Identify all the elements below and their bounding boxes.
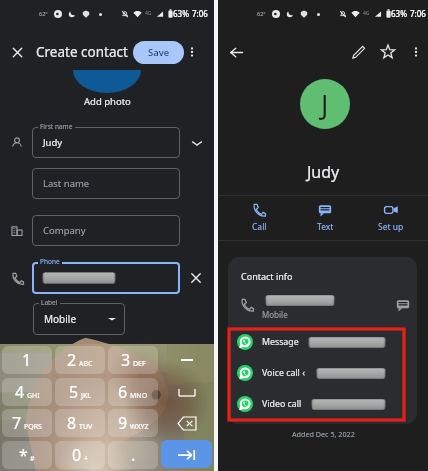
- button[interactable]: Company: [32, 215, 180, 246]
- button[interactable]: J: [300, 79, 350, 129]
- button[interactable]: Mobile: [33, 303, 125, 335]
- staticText: 4G: [363, 10, 370, 17]
- button[interactable]: 8: [55, 409, 105, 437]
- staticText: WXYZ: [130, 422, 149, 432]
- staticText: +: [84, 454, 89, 464]
- button[interactable]: Last name: [32, 168, 180, 199]
- staticText: 4G: [145, 10, 152, 17]
- button[interactable]: More options: [186, 46, 198, 58]
- staticText: Create contact: [36, 43, 128, 61]
- staticText: 8: [67, 412, 77, 434]
- staticText: ABC: [79, 359, 93, 369]
- staticText: Call: [252, 221, 267, 233]
- staticText: Judy: [43, 136, 63, 149]
- button[interactable]: 2: [55, 346, 105, 374]
- staticText: First name: [40, 122, 73, 131]
- staticText: 63%: [391, 8, 407, 19]
- staticText: DEF: [133, 359, 146, 369]
- button[interactable]: 5: [55, 378, 105, 406]
- staticText: 63%: [173, 8, 189, 19]
- staticText: J: [321, 86, 329, 123]
- staticText: Last name: [43, 177, 90, 190]
- staticText: Set up: [378, 221, 404, 233]
- staticText: TUV: [79, 422, 93, 432]
- staticText: Voice call ‹: [262, 367, 305, 379]
- staticText: 1: [22, 349, 32, 371]
- staticText: 9: [118, 412, 128, 434]
- button[interactable]: 9: [108, 409, 158, 437]
- button[interactable]: Edit: [352, 45, 366, 59]
- staticText: Video call: [262, 398, 302, 410]
- staticText: Mobile: [44, 312, 77, 326]
- staticText: 3: [121, 349, 131, 371]
- button[interactable]: Video call: [228, 391, 417, 417]
- button[interactable]: Back: [229, 45, 244, 60]
- button[interactable]: Dash: [161, 346, 212, 374]
- button[interactable]: .: [108, 441, 158, 469]
- staticText: Added Dec 5, 2022: [292, 429, 355, 439]
- staticText: Text: [317, 221, 334, 233]
- staticText: 7:06: [192, 8, 208, 19]
- button[interactable]: Set up: [358, 196, 424, 240]
- staticText: Contact info: [241, 270, 293, 282]
- button[interactable]: 0: [55, 441, 105, 469]
- staticText: Save: [148, 46, 170, 59]
- button[interactable]: Judy: [32, 127, 180, 158]
- button[interactable]: Space: [161, 378, 212, 406]
- staticText: Message: [262, 336, 299, 348]
- button[interactable]: More options: [410, 46, 422, 58]
- button[interactable]: Close: [10, 45, 25, 60]
- staticText: 62°: [39, 10, 48, 17]
- button[interactable]: Clear phone number: [189, 271, 203, 285]
- button[interactable]: Text: [292, 196, 358, 240]
- button[interactable]: Add photo: [73, 70, 141, 92]
- button[interactable]: [32, 262, 180, 294]
- button[interactable]: 4: [2, 378, 52, 406]
- staticText: 5: [69, 381, 79, 403]
- staticText: 2: [67, 349, 77, 371]
- staticText: MNO: [130, 391, 148, 401]
- staticText: Judy: [307, 161, 340, 183]
- staticText: 7:06: [410, 8, 426, 19]
- button[interactable]: 7: [2, 409, 52, 437]
- button[interactable]: Send message: [396, 298, 410, 312]
- staticText: .: [131, 444, 136, 466]
- button[interactable]: 6: [108, 378, 158, 406]
- button[interactable]: Backspace: [161, 409, 212, 437]
- button[interactable]: 3: [108, 346, 158, 374]
- staticText: 0: [72, 444, 82, 466]
- staticText: 6: [118, 381, 128, 403]
- button[interactable]: Save: [133, 41, 184, 64]
- staticText: Company: [43, 224, 86, 237]
- staticText: *: [19, 444, 28, 466]
- staticText: Add photo: [84, 95, 131, 108]
- staticText: 4: [15, 381, 25, 403]
- button[interactable]: 1: [2, 346, 52, 374]
- button[interactable]: Expand name fields: [190, 136, 204, 150]
- staticText: 7: [12, 412, 22, 434]
- button[interactable]: Message: [228, 329, 417, 355]
- staticText: Phone: [40, 257, 60, 266]
- staticText: JKL: [81, 391, 91, 401]
- staticText: 62°: [257, 10, 266, 17]
- staticText: PQRS: [24, 422, 42, 432]
- staticText: Mobile: [262, 309, 288, 320]
- button[interactable]: Add to favorites: [381, 45, 395, 59]
- staticText: GHI: [27, 391, 40, 401]
- button[interactable]: Voice call ‹: [228, 360, 417, 386]
- button[interactable]: Call: [226, 196, 292, 240]
- button[interactable]: *: [2, 441, 52, 469]
- staticText: #: [30, 454, 35, 464]
- button[interactable]: Enter: [161, 440, 212, 468]
- staticText: Label: [41, 298, 58, 307]
